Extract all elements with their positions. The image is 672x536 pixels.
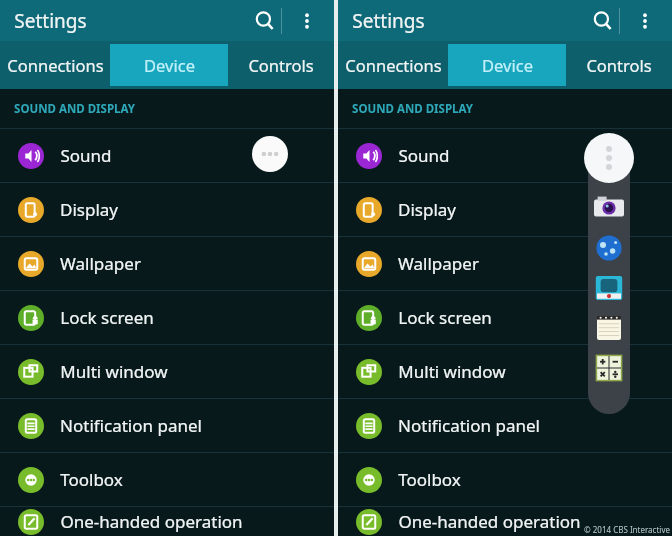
button[interactable]: Close toolbox (584, 133, 634, 183)
staticText: Controls (248, 54, 314, 76)
staticText: Connections (7, 54, 104, 76)
staticText: Settings (14, 8, 87, 34)
button[interactable]: Wallpaper (0, 237, 334, 290)
button[interactable]: Search (248, 4, 282, 38)
staticText: Device (482, 54, 533, 76)
button[interactable]: Multi window (0, 345, 334, 398)
staticText: Sound (398, 144, 450, 167)
staticText: Toolbox (60, 468, 123, 491)
button[interactable]: camera (594, 193, 624, 223)
button[interactable]: Toolbox (338, 453, 672, 506)
button[interactable]: Notification panel (0, 399, 334, 452)
staticText: Multi window (60, 360, 168, 383)
button[interactable]: Display (338, 183, 672, 236)
button[interactable]: Wallpaper (338, 237, 672, 290)
button[interactable]: More options (628, 4, 662, 38)
staticText: Display (398, 198, 456, 221)
staticText: Notification panel (60, 414, 202, 437)
staticText: Multi window (398, 360, 506, 383)
staticText: One-handed operation (398, 510, 581, 533)
button[interactable]: Connections (338, 41, 448, 89)
staticText: Sound (60, 144, 112, 167)
staticText: Display (60, 198, 118, 221)
staticText: Lock screen (60, 306, 154, 329)
button[interactable]: More options (290, 4, 324, 38)
button[interactable]: Device (448, 44, 566, 86)
staticText: Wallpaper (398, 252, 479, 275)
button[interactable]: Toolbox floating button (252, 136, 288, 172)
staticText: © 2014 CBS Interactive (584, 524, 670, 535)
button[interactable]: One-handed operation (338, 507, 672, 536)
button[interactable]: Lock screen (0, 291, 334, 344)
button[interactable]: voice (594, 273, 624, 303)
button[interactable]: Connections (0, 41, 110, 89)
button[interactable]: Toolbox (0, 453, 334, 506)
staticText: SOUND AND DISPLAY (352, 101, 473, 117)
button[interactable]: Sound (0, 129, 334, 182)
staticText: Lock screen (398, 306, 492, 329)
button[interactable]: Multi window (338, 345, 672, 398)
staticText: Wallpaper (60, 252, 141, 275)
button[interactable]: Sound (338, 129, 672, 182)
button[interactable]: memo (594, 313, 624, 343)
staticText: Notification panel (398, 414, 540, 437)
button[interactable]: Controls (228, 41, 334, 89)
staticText: Device (144, 54, 195, 76)
button[interactable]: Lock screen (338, 291, 672, 344)
button[interactable]: Notification panel (338, 399, 672, 452)
button[interactable]: calc (594, 353, 624, 383)
staticText: SOUND AND DISPLAY (14, 101, 135, 117)
button[interactable]: browser (594, 233, 624, 263)
staticText: One-handed operation (60, 510, 243, 533)
button[interactable]: Controls (566, 41, 672, 89)
button[interactable]: Search (586, 4, 620, 38)
staticText: Controls (586, 54, 652, 76)
button[interactable]: One-handed operation (0, 507, 334, 536)
staticText: Toolbox (398, 468, 461, 491)
staticText: Settings (352, 8, 425, 34)
button[interactable]: Display (0, 183, 334, 236)
button[interactable]: Device (110, 44, 228, 86)
staticText: Connections (345, 54, 442, 76)
